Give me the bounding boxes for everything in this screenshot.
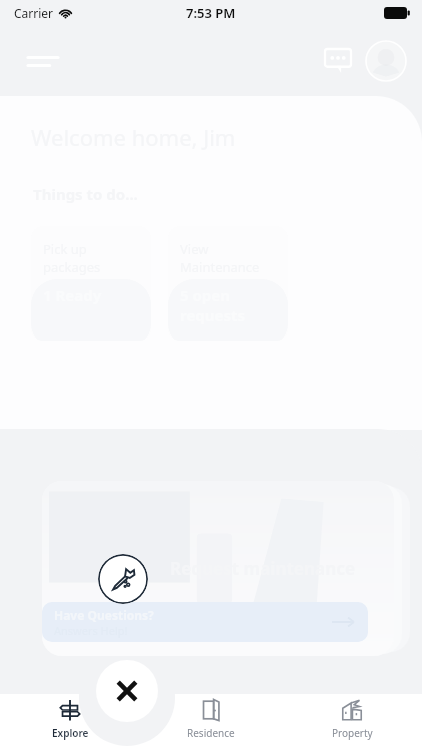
button[interactable]: Close <box>96 660 158 722</box>
staticText: Carrier <box>14 5 54 21</box>
button[interactable]: Profile <box>364 39 408 83</box>
button[interactable]: Residence <box>141 695 281 744</box>
button[interactable]: Explore <box>0 695 140 744</box>
staticText: Residence <box>187 726 235 740</box>
button[interactable]: Request maintenance <box>98 554 148 604</box>
staticText: Explore <box>52 726 89 740</box>
staticText: 7:53 PM <box>186 4 236 22</box>
staticText: Things to do... <box>33 184 138 204</box>
button[interactable]: Request maintenance <box>42 481 394 656</box>
staticText: Property <box>332 726 373 740</box>
staticText: Welcome home, Jim <box>31 122 236 152</box>
button[interactable]: Property <box>282 695 422 744</box>
button[interactable]: Menu <box>22 40 64 82</box>
button[interactable]: Messages <box>318 41 358 81</box>
staticText: Have Questions? <box>54 607 154 623</box>
button[interactable]: Have Questions? <box>42 602 368 642</box>
